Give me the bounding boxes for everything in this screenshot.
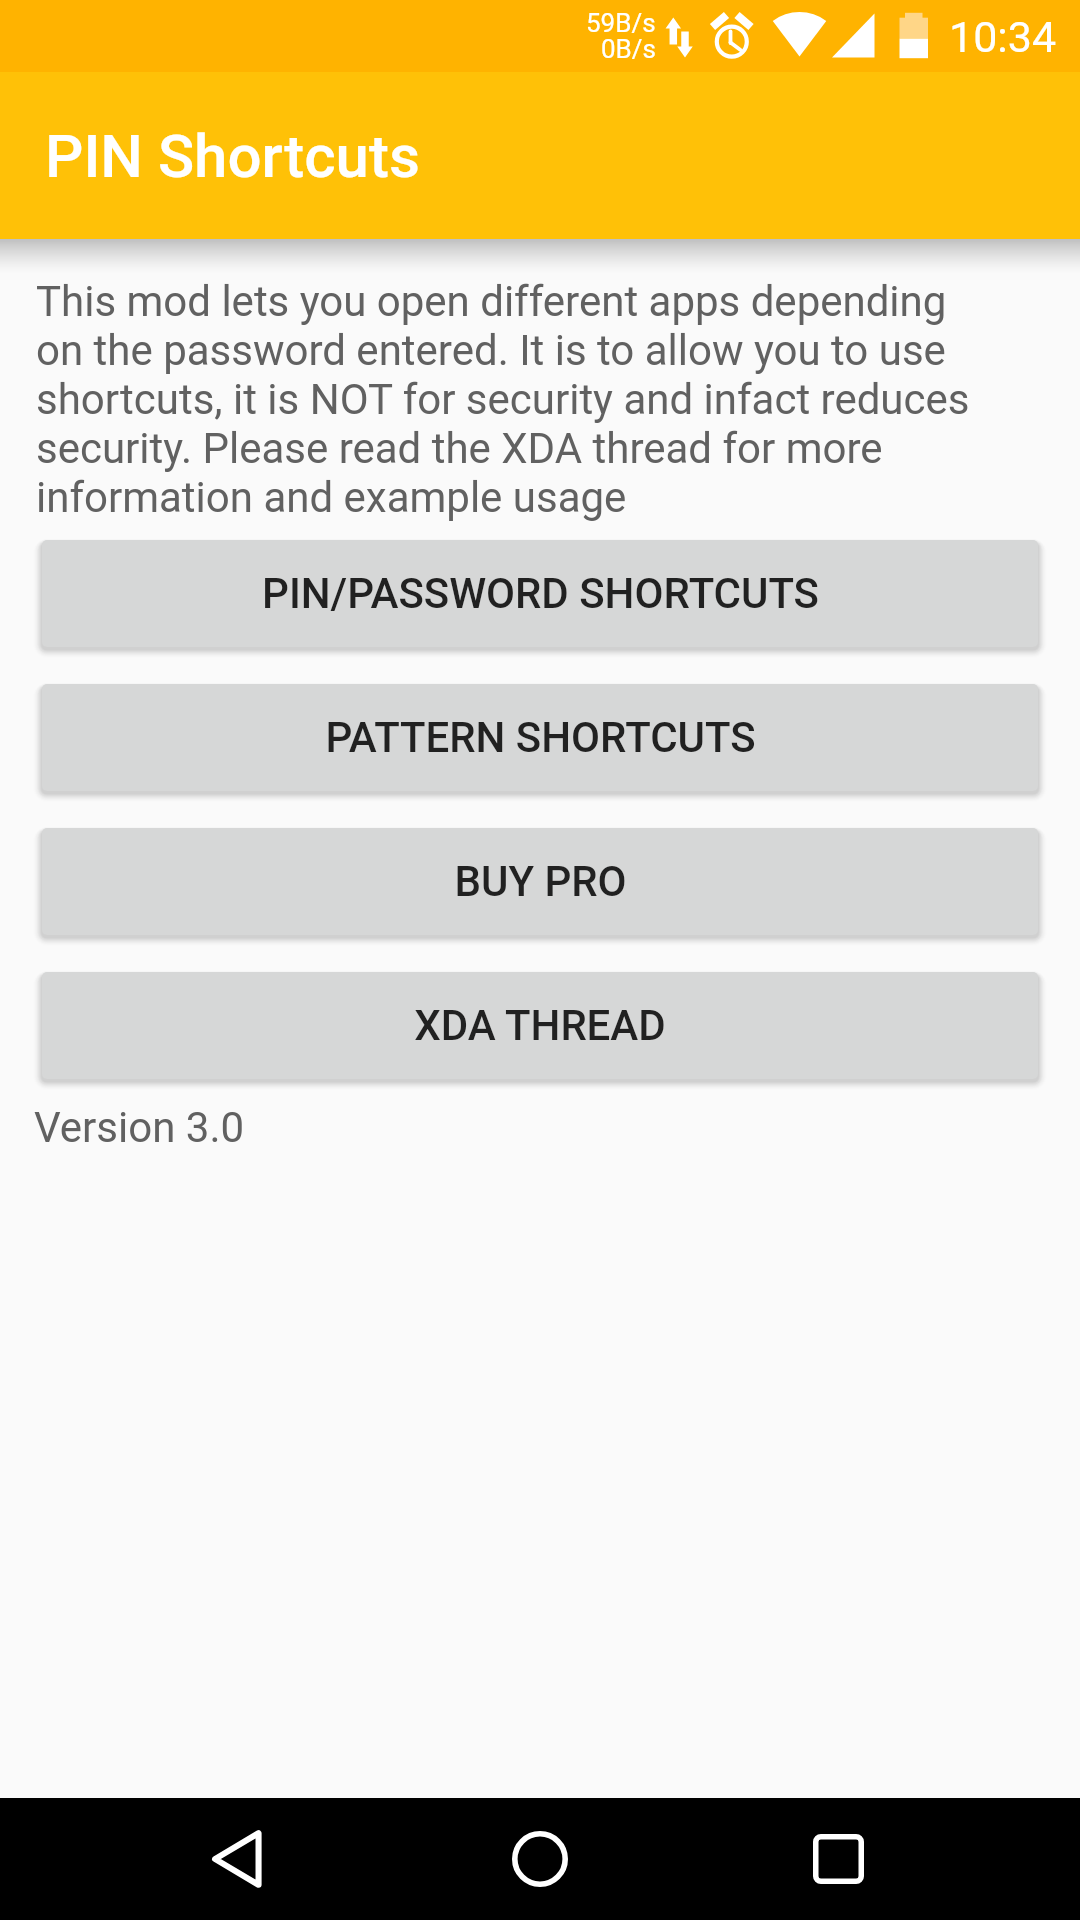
staticText: PIN Shortcuts [45,121,420,191]
button[interactable]: Back [178,1798,302,1920]
staticText: PATTERN SHORTCUTS [325,713,756,762]
button[interactable]: Home [478,1798,602,1920]
button[interactable]: PATTERN SHORTCUTS [42,684,1038,791]
staticText: Version 3.0 [34,1103,245,1152]
staticText: XDA THREAD [414,1001,666,1050]
button[interactable]: Recent apps [776,1798,900,1920]
staticText: PIN/PASSWORD SHORTCUTS [262,569,819,618]
staticText: 0B/s [601,34,656,64]
button[interactable]: BUY PRO [42,828,1038,935]
button[interactable]: XDA THREAD [42,972,1038,1079]
staticText: 10:34 [949,12,1057,62]
staticText: This mod lets you open different apps de… [36,277,984,522]
staticText: 59B/s [586,8,656,38]
button[interactable]: PIN/PASSWORD SHORTCUTS [42,540,1038,647]
staticText: BUY PRO [454,857,627,906]
